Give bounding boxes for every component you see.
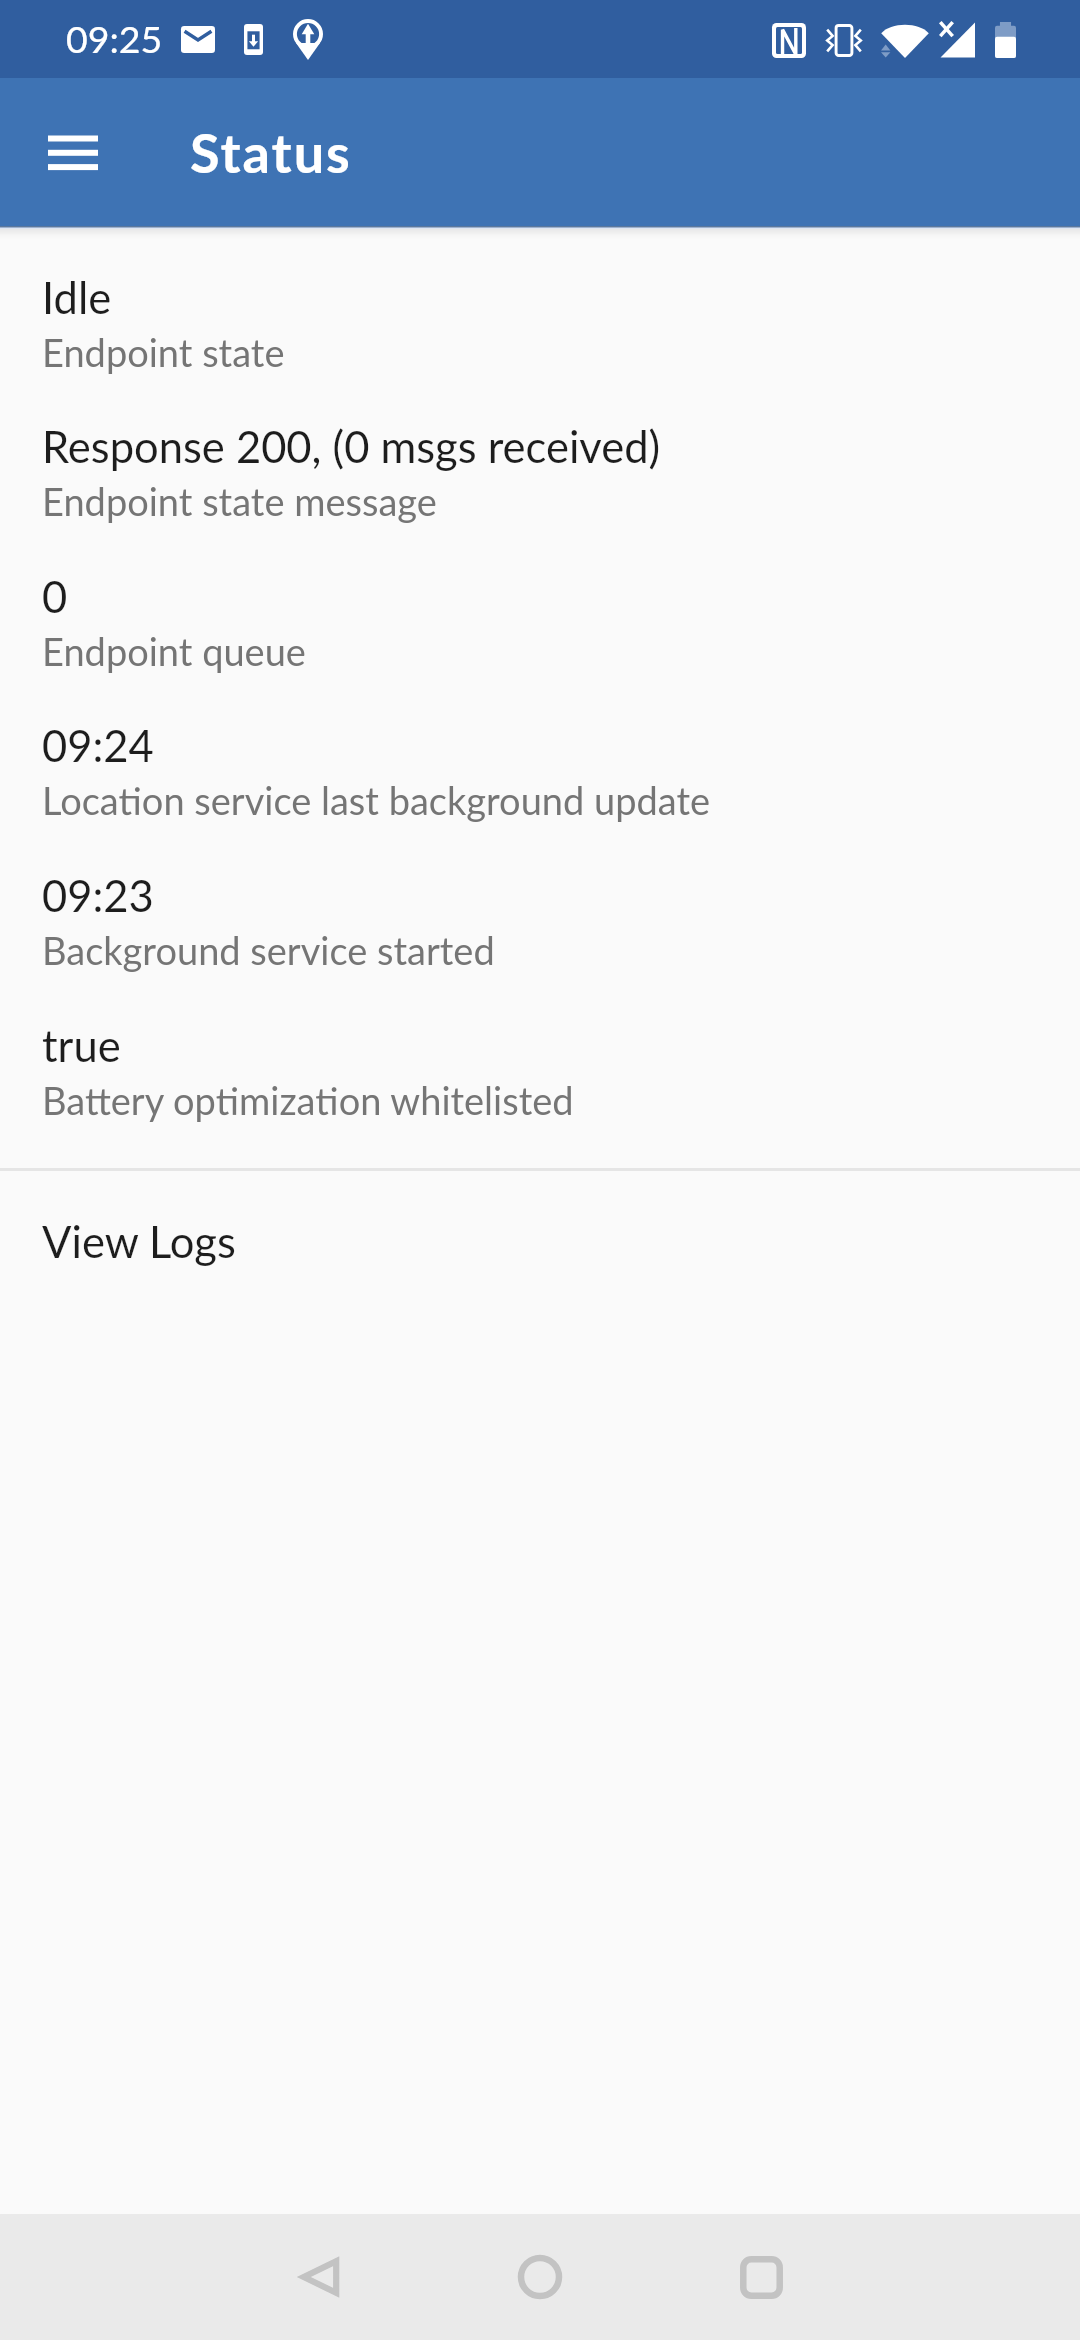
button[interactable]: Recent apps	[698, 2214, 824, 2340]
staticText: Battery optimization whitelisted	[42, 1077, 574, 1123]
staticText: Response 200, (0 msgs received)	[42, 420, 661, 472]
button[interactable]: true	[0, 1007, 1080, 1136]
staticText: View Logs	[42, 1215, 236, 1267]
staticText: 09:25	[66, 16, 163, 61]
button[interactable]: Open navigation drawer	[0, 78, 146, 224]
staticText: 09:24	[42, 719, 154, 771]
staticText: Endpoint queue	[42, 628, 306, 674]
staticText: Endpoint state	[42, 329, 285, 375]
button[interactable]: Response 200, (0 msgs received)	[0, 408, 1080, 537]
button[interactable]: 09:24	[0, 707, 1080, 836]
staticText: Idle	[42, 271, 112, 323]
button[interactable]: Home	[477, 2214, 603, 2340]
staticText: 0	[42, 570, 68, 622]
staticText: Endpoint state message	[42, 478, 437, 524]
staticText: true	[42, 1019, 121, 1071]
staticText: Background service started	[42, 927, 495, 973]
button[interactable]: View Logs	[0, 1171, 1080, 1289]
staticText: 09:23	[42, 869, 154, 921]
button[interactable]: Idle	[0, 259, 1080, 388]
button[interactable]: Back	[257, 2214, 383, 2340]
button[interactable]: 09:23	[0, 857, 1080, 986]
button[interactable]: 0	[0, 558, 1080, 687]
staticText: Status	[190, 120, 352, 185]
staticText: Location service last background update	[42, 777, 711, 823]
